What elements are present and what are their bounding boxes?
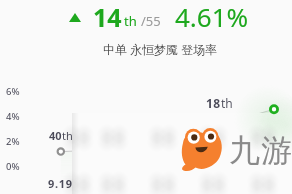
staticText: 14 (93, 0, 122, 34)
staticText: 4.61% (175, 0, 249, 34)
staticText: 2% (6, 135, 20, 148)
staticText: 40 (49, 128, 62, 143)
staticText: 18 (206, 95, 221, 111)
staticText: 4% (6, 110, 20, 123)
staticText: 中单 永恒梦魇 登场率 (103, 41, 218, 57)
staticText: 九游 (229, 131, 292, 170)
staticText: th (62, 128, 73, 143)
staticText: 6% (6, 85, 20, 98)
staticText: th (221, 95, 233, 111)
staticText: /55 (141, 12, 161, 30)
staticText: 9.19 (48, 176, 73, 191)
staticText: 0% (6, 160, 20, 173)
staticText: th (124, 12, 137, 30)
